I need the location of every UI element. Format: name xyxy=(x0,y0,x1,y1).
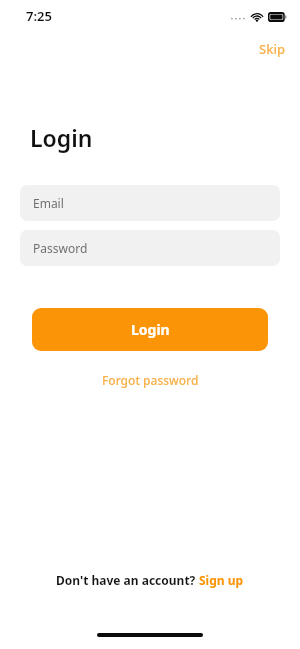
staticText: Email xyxy=(33,195,64,211)
button[interactable]: Password xyxy=(20,230,280,266)
staticText: Sign up xyxy=(199,572,244,588)
staticText: Login xyxy=(30,122,93,153)
button[interactable]: Sign up xyxy=(199,572,244,588)
button[interactable]: Email xyxy=(20,185,280,221)
staticText: Don't have an account? xyxy=(56,572,199,588)
button[interactable]: Login xyxy=(32,308,268,351)
other: Cellular signal xyxy=(230,12,246,22)
staticText: Forgot password xyxy=(102,372,199,388)
button[interactable]: Skip xyxy=(244,36,300,62)
staticText: Password xyxy=(33,240,88,256)
staticText: Login xyxy=(131,320,170,339)
other: Battery xyxy=(268,12,287,22)
button[interactable]: Forgot password xyxy=(92,368,209,392)
staticText: Skip xyxy=(259,40,285,58)
other: Wi-Fi xyxy=(250,11,264,22)
staticText: 7:25 xyxy=(26,7,52,25)
